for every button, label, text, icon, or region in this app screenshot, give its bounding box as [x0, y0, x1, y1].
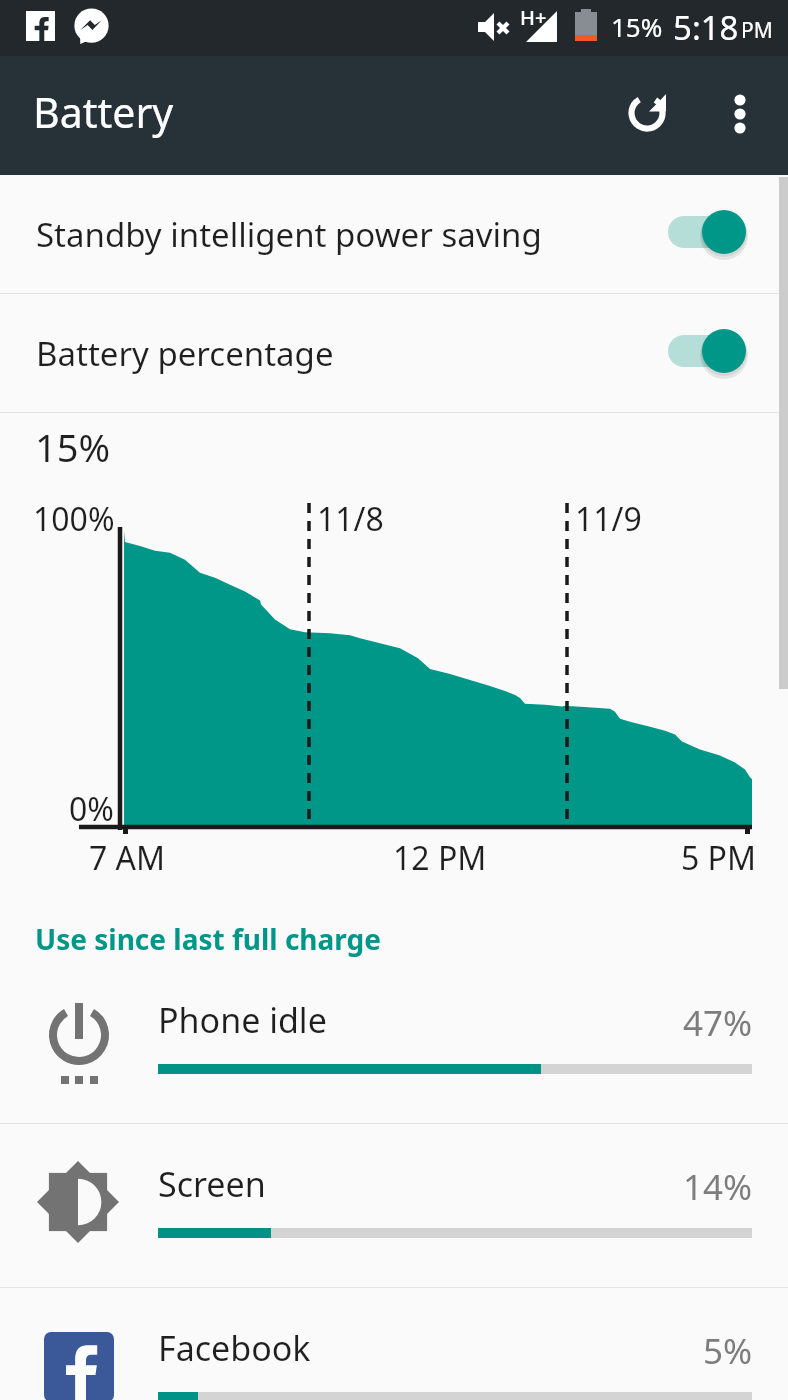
staticText: Battery percentage	[36, 331, 668, 376]
staticText: 47%	[683, 999, 753, 1047]
staticText: 15%	[611, 9, 663, 44]
button[interactable]: Battery percentage	[0, 294, 788, 412]
staticText: Use since last full charge	[35, 920, 381, 958]
staticText: 12 PM	[393, 836, 487, 880]
staticText: H+	[520, 4, 547, 31]
button[interactable]: Refresh	[603, 72, 691, 160]
staticText: Screen	[158, 1161, 266, 1207]
staticText: 5:18	[673, 5, 739, 50]
staticText: Battery	[33, 84, 174, 140]
staticText: PM	[741, 16, 773, 45]
staticText: Phone idle	[158, 997, 327, 1043]
staticText: 14%	[683, 1163, 753, 1211]
staticText: 11/8	[317, 497, 384, 541]
staticText: Standby intelligent power saving	[36, 212, 668, 257]
button[interactable]: Facebook	[0, 1288, 788, 1400]
staticText: 100%	[33, 497, 115, 541]
staticText: 7 AM	[89, 836, 166, 880]
staticText: 5%	[703, 1327, 753, 1375]
staticText: Facebook	[158, 1325, 311, 1371]
staticText: 11/9	[575, 497, 642, 541]
button[interactable]: Phone idle	[0, 960, 788, 1123]
button[interactable]: Screen	[0, 1124, 788, 1287]
button[interactable]: More options	[696, 72, 784, 160]
staticText: 15%	[35, 421, 111, 473]
button[interactable]: Standby intelligent power saving	[0, 175, 788, 293]
staticText: 5 PM	[681, 836, 757, 880]
staticText: 0%	[69, 787, 114, 831]
